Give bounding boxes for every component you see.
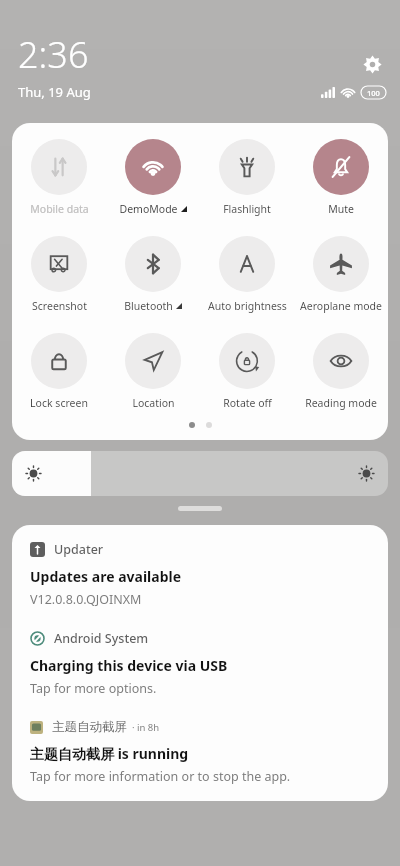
- staticText: Screenshot: [32, 299, 87, 313]
- staticText: Rotate off: [223, 396, 272, 410]
- staticText: Lock screen: [30, 396, 88, 410]
- button[interactable]: Screenshot: [12, 234, 106, 315]
- button[interactable]: 主题自动截屏: [12, 719, 388, 785]
- staticText: Updates are available: [30, 567, 182, 586]
- staticText: Mute: [328, 202, 354, 216]
- staticText: Tap for more options.: [30, 680, 157, 697]
- button[interactable]: Settings: [358, 50, 386, 78]
- button[interactable]: Flashlight: [200, 137, 294, 218]
- button[interactable]: Location: [106, 331, 200, 412]
- staticText: Reading mode: [305, 396, 377, 410]
- button[interactable]: Mute: [294, 137, 388, 218]
- button[interactable]: Mobile data: [12, 137, 106, 218]
- button[interactable]: Expand: [178, 506, 222, 511]
- staticText: Flashlight: [223, 202, 271, 216]
- staticText: DemoMode: [119, 202, 178, 216]
- staticText: Auto brightness: [208, 299, 287, 313]
- staticText: Aeroplane mode: [300, 299, 382, 313]
- button[interactable]: Updater: [12, 541, 388, 608]
- staticText: 2:36: [18, 30, 89, 79]
- staticText: Bluetooth: [124, 299, 173, 313]
- staticText: 100: [367, 88, 380, 98]
- button[interactable]: Aeroplane mode: [294, 234, 388, 315]
- button[interactable]: Rotate off: [200, 331, 294, 412]
- staticText: Location: [132, 396, 175, 410]
- button[interactable]: DemoMode: [106, 137, 200, 218]
- staticText: V12.0.8.0.QJOINXM: [30, 591, 142, 608]
- staticText: Tap for more information or to stop the …: [30, 768, 291, 785]
- button[interactable]: Brightness: [12, 451, 388, 496]
- button[interactable]: Lock screen: [12, 331, 106, 412]
- staticText: Updater: [54, 541, 104, 558]
- button[interactable]: Reading mode: [294, 331, 388, 412]
- button[interactable]: Android System: [12, 630, 388, 697]
- button[interactable]: Bluetooth: [106, 234, 200, 315]
- staticText: Charging this device via USB: [30, 656, 228, 675]
- button[interactable]: Auto brightness: [200, 234, 294, 315]
- staticText: Thu, 19 Aug: [18, 83, 91, 101]
- staticText: · in 8h: [132, 721, 160, 734]
- staticText: Mobile data: [30, 202, 89, 216]
- staticText: 主题自动截屏 is running: [30, 744, 189, 763]
- staticText: 主题自动截屏: [52, 719, 127, 735]
- staticText: Android System: [54, 630, 149, 647]
